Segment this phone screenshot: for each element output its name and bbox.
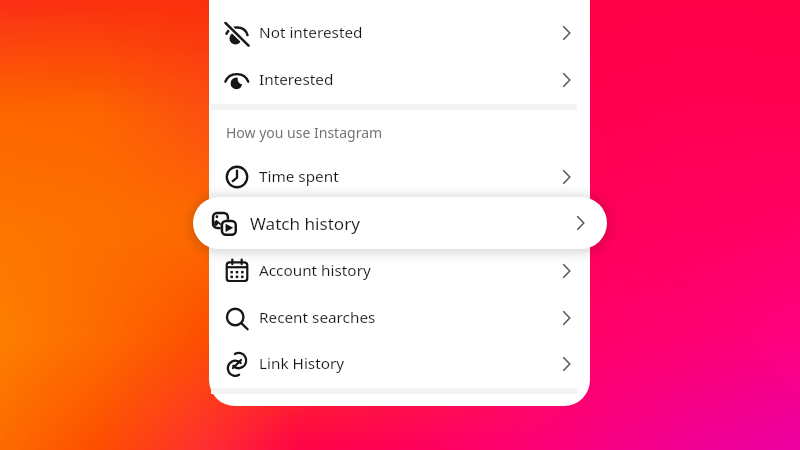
other: Watch history bbox=[211, 211, 237, 237]
staticText: Link History bbox=[259, 353, 345, 374]
staticText: How you use Instagram bbox=[226, 123, 383, 142]
button[interactable]: Recent searches bbox=[209, 294, 590, 341]
button[interactable]: Link History bbox=[209, 340, 590, 387]
button[interactable]: Account history bbox=[209, 247, 590, 294]
staticText: Recent searches bbox=[259, 307, 376, 328]
button[interactable]: Not interested bbox=[209, 9, 590, 56]
staticText: Watch history bbox=[250, 212, 360, 235]
staticText: Account history bbox=[259, 260, 371, 281]
staticText: Interested bbox=[259, 69, 334, 90]
staticText: Time spent bbox=[259, 166, 339, 187]
button[interactable]: Time spent bbox=[209, 153, 590, 200]
staticText: Not interested bbox=[259, 22, 363, 43]
button[interactable]: Watch history bbox=[193, 197, 607, 249]
button[interactable]: Interested bbox=[209, 56, 590, 103]
